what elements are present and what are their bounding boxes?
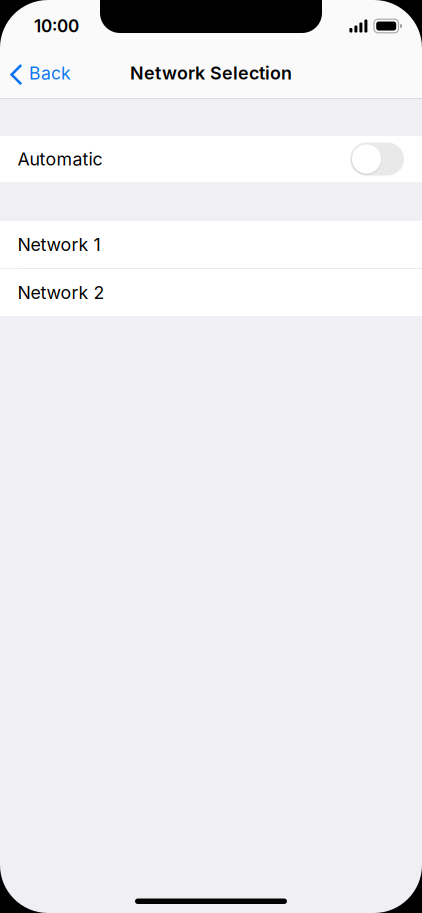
button[interactable]: Network 1 (0, 221, 422, 268)
staticText: Back (29, 62, 71, 84)
button[interactable]: Network 2 (0, 269, 422, 316)
staticText: Network 1 (17, 234, 100, 255)
staticText: 10:00 (34, 16, 79, 36)
staticText: Network Selection (130, 62, 292, 84)
staticText: Automatic (17, 148, 102, 170)
button[interactable]: Back (0, 49, 83, 97)
staticText: Network 2 (17, 282, 104, 303)
button[interactable]: Automatic (0, 136, 422, 182)
